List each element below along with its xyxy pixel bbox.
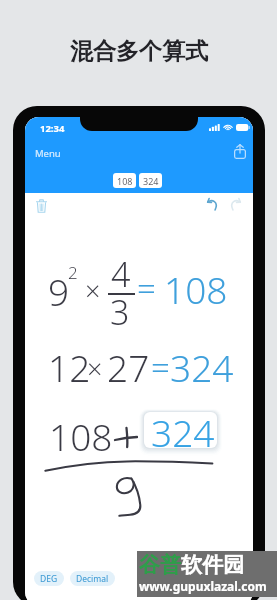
button[interactable]: 324 xyxy=(139,173,162,188)
button[interactable]: Menu xyxy=(30,143,66,164)
staticText: = xyxy=(137,266,156,311)
staticText: 12 xyxy=(48,342,91,392)
staticText: 混合多个算式 xyxy=(70,37,208,66)
staticText: 4 xyxy=(111,251,131,297)
staticText: 324 xyxy=(151,407,215,457)
staticText: 12:34 xyxy=(40,122,65,135)
staticText: Menu xyxy=(35,147,61,160)
button[interactable]: Delete xyxy=(31,195,52,216)
button[interactable]: Undo xyxy=(202,194,223,215)
staticText: × xyxy=(87,350,103,387)
staticText: DEG xyxy=(40,573,58,585)
staticText: 108 xyxy=(164,264,228,314)
staticText: www.gupuxlazal.com xyxy=(139,578,267,594)
button[interactable]: Redo xyxy=(225,194,246,215)
button[interactable]: Decimal xyxy=(70,571,115,586)
staticText: Decimal xyxy=(76,573,109,585)
staticText: 27 xyxy=(107,342,150,392)
staticText: 谷普 xyxy=(139,552,181,578)
button[interactable]: 108 xyxy=(113,173,136,188)
staticText: = xyxy=(151,345,170,390)
staticText: 3 xyxy=(110,289,130,335)
staticText: × xyxy=(85,272,101,309)
staticText: 2 xyxy=(68,261,78,284)
button[interactable]: DEG xyxy=(34,571,64,586)
button[interactable]: Share xyxy=(230,141,250,161)
staticText: 108 xyxy=(117,175,133,187)
staticText: 9 xyxy=(48,266,70,316)
staticText: 324 xyxy=(143,175,159,187)
staticText: 108 xyxy=(49,411,113,461)
staticText: 324 xyxy=(170,342,234,392)
staticText: 软件园 xyxy=(181,552,244,578)
